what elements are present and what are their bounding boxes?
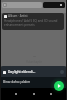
staticText: Biraz daha çalalım: [3, 80, 31, 84]
button[interactable]: More: [60, 70, 64, 74]
staticText: Album · Artist: [8, 14, 28, 18]
button[interactable]: Now playing: [2, 2, 42, 8]
staticText: Daylight eklendi...: [8, 70, 36, 74]
button[interactable]: Daylight eklendi...: [0, 66, 67, 77]
staticText: enhancement presets: [4, 23, 35, 27]
button[interactable]: Album · Artist: [2, 13, 64, 30]
button[interactable]: Close: [43, 2, 65, 8]
staticText: Headphones? Add 5 EQ and 3D sound: [4, 19, 58, 23]
button[interactable]: Play: [54, 81, 64, 91]
